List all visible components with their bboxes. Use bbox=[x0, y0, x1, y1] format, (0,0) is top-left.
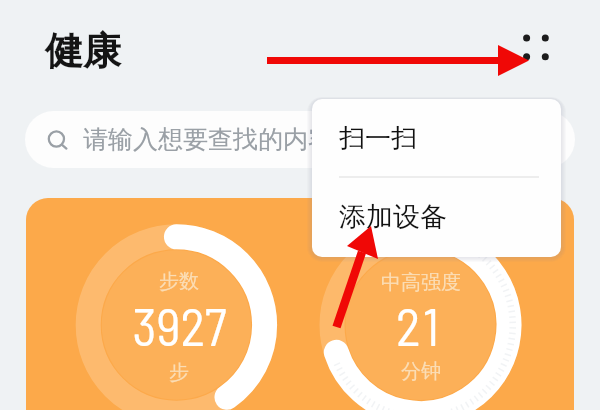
staticText: 扫一扫 bbox=[339, 122, 417, 155]
staticText: 21 bbox=[396, 294, 443, 354]
button[interactable]: 请输入想要查找的内容 bbox=[25, 111, 575, 168]
staticText: 健康 bbox=[45, 27, 121, 75]
staticText: 3927 bbox=[132, 294, 227, 354]
staticText: 请输入想要查找的内容 bbox=[83, 124, 333, 155]
button[interactable] bbox=[26, 198, 574, 410]
staticText: 分钟 bbox=[401, 359, 441, 384]
staticText: 步 bbox=[169, 360, 189, 385]
staticText: 步数 bbox=[159, 269, 199, 294]
staticText: 添加设备 bbox=[339, 200, 447, 234]
button[interactable]: 添加设备 bbox=[312, 178, 561, 256]
staticText: 中高强度 bbox=[381, 270, 461, 295]
button[interactable]: 扫一扫 bbox=[312, 99, 561, 177]
button[interactable]: More options bbox=[500, 12, 556, 68]
